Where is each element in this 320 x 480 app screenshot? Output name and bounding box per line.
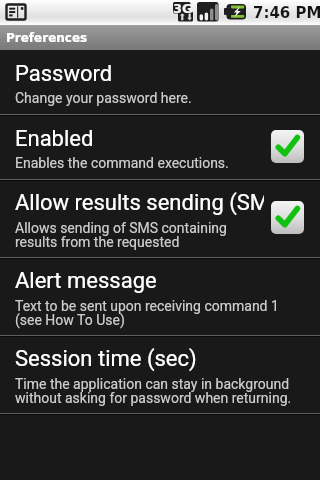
button[interactable]: Toggle setting bbox=[271, 201, 304, 234]
staticText: Preferences bbox=[6, 31, 88, 45]
button[interactable]: Session time (sec) bbox=[0, 337, 320, 413]
button[interactable]: Preferences bbox=[0, 25, 320, 50]
staticText: 7:46 PM bbox=[253, 4, 320, 21]
staticText: Session time (sec) bbox=[15, 346, 197, 372]
staticText: Text to be sent upon receiving command 1… bbox=[15, 298, 279, 329]
button[interactable]: Alert message bbox=[0, 259, 320, 335]
staticText: Enables the command executions. bbox=[15, 155, 229, 171]
button[interactable]: Enabled bbox=[0, 116, 320, 179]
staticText: Enabled bbox=[15, 126, 94, 152]
staticText: Change your password here. bbox=[15, 90, 192, 106]
staticText: Alert message bbox=[15, 268, 157, 294]
staticText: Time the application can stay in backgro… bbox=[15, 376, 292, 407]
staticText: Allows sending of SMS containing results… bbox=[15, 220, 227, 251]
button[interactable]: Allow results sending (SMS) bbox=[0, 181, 320, 257]
staticText: 3G bbox=[173, 1, 193, 16]
staticText: Allow results sending (SMS) bbox=[15, 190, 264, 216]
staticText: Password bbox=[15, 61, 113, 87]
button[interactable]: Password bbox=[0, 50, 320, 114]
button[interactable]: Toggle setting bbox=[271, 130, 304, 163]
